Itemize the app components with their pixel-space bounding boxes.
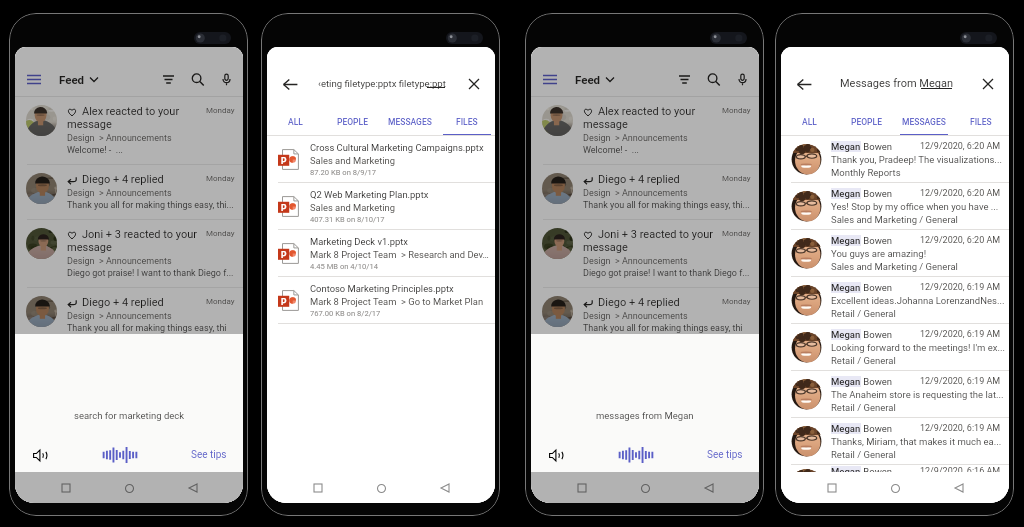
staticText: Bowen: [861, 282, 893, 293]
staticText: PEOPLE: [337, 117, 368, 127]
button[interactable]: Joni + 3 reacted to your: [531, 220, 759, 288]
staticText: Monday: [722, 229, 751, 238]
staticText: Bowen: [861, 235, 893, 246]
button[interactable]: Diego + 4 replied: [531, 165, 759, 220]
staticText: 12/9/2020, 6:19 AM: [920, 423, 1001, 434]
staticText: Retail / General: [831, 308, 896, 319]
staticText: Sales and Marketing / General: [831, 261, 958, 272]
staticText: 12/9/2020, 6:19 AM: [920, 329, 1001, 340]
button[interactable]: Search: [700, 66, 726, 92]
staticText: Megan: [831, 282, 861, 293]
button[interactable]: Back: [277, 71, 303, 97]
button[interactable]: FILES: [438, 108, 495, 136]
staticText: Mark 8 Project Team > Research and Dev..…: [310, 249, 489, 260]
staticText: Sales and Marketing: [310, 155, 395, 166]
button[interactable]: P: [267, 136, 495, 183]
staticText: Megan: [831, 188, 861, 199]
button[interactable]: See tips: [705, 447, 745, 463]
staticText: Sales and Marketing / General: [831, 214, 958, 225]
staticText: Thank you all for making things easy, th…: [67, 323, 227, 334]
staticText: Diego + 4 replied: [82, 296, 164, 309]
button[interactable]: Home: [368, 475, 394, 501]
staticText: The Anaheim store is requesting the lat.…: [831, 389, 1004, 400]
button[interactable]: Sound: [545, 444, 567, 466]
button[interactable]: Recents: [53, 475, 79, 501]
staticText: Design > Announcements: [583, 256, 688, 267]
staticText: P: [281, 250, 287, 260]
button[interactable]: Filter: [155, 66, 181, 92]
button[interactable]: Joni + 3 reacted to your: [15, 220, 243, 288]
staticText: Design > Announcements: [583, 311, 688, 322]
button[interactable]: Feed: [575, 73, 614, 86]
button[interactable]: Back: [432, 475, 458, 501]
button[interactable]: Diego + 4 replied: [531, 288, 759, 343]
button[interactable]: Back: [696, 475, 722, 501]
staticText: Bowen: [861, 376, 893, 387]
button[interactable]: ALL: [781, 108, 838, 136]
button[interactable]: Alex reacted to your: [15, 97, 243, 165]
button[interactable]: Feed: [59, 73, 98, 86]
staticText: Monday: [206, 174, 235, 183]
button[interactable]: Megan: [781, 418, 1009, 465]
staticText: Yes! Stop by my office when you have ...: [831, 201, 999, 212]
button[interactable]: Recents: [305, 475, 331, 501]
button[interactable]: MESSAGES: [895, 108, 952, 136]
button[interactable]: Back: [946, 475, 972, 501]
button[interactable]: Recents: [569, 475, 595, 501]
button[interactable]: Megan: [781, 465, 1009, 503]
staticText: Thank you all for making things easy, th…: [67, 200, 234, 211]
button[interactable]: Voice search: [729, 66, 755, 92]
staticText: Design > Announcements: [67, 256, 172, 267]
button[interactable]: Voice search: [213, 66, 239, 92]
button[interactable]: Megan: [781, 371, 1009, 418]
staticText: PEOPLE: [851, 117, 882, 127]
button[interactable]: Megan: [781, 230, 1009, 277]
staticText: Alex reacted to your: [598, 105, 696, 118]
staticText: 12/9/2020, 6:16 AM: [920, 466, 1001, 477]
button[interactable]: Filter: [671, 66, 697, 92]
button[interactable]: Diego + 4 replied: [15, 165, 243, 220]
staticText: 407.31 KB on 8/10/17: [310, 215, 385, 224]
button[interactable]: Sound: [29, 444, 51, 466]
staticText: Diego + 4 replied: [598, 296, 680, 309]
button[interactable]: Search: [184, 66, 210, 92]
staticText: Megan: [831, 423, 861, 434]
button[interactable]: PEOPLE: [324, 108, 381, 136]
button[interactable]: P: [267, 230, 495, 277]
button[interactable]: Back: [180, 475, 206, 501]
staticText: Monday: [206, 229, 235, 238]
button[interactable]: MESSAGES: [381, 108, 438, 136]
staticText: message: [67, 118, 112, 131]
button[interactable]: Megan: [781, 183, 1009, 230]
button[interactable]: Home: [116, 475, 142, 501]
button[interactable]: Recents: [819, 475, 845, 501]
button[interactable]: PEOPLE: [838, 108, 895, 136]
staticText: Bowen: [861, 188, 893, 199]
button[interactable]: Megan: [781, 277, 1009, 324]
button[interactable]: Back: [791, 71, 817, 97]
staticText: Design > Announcements: [67, 188, 172, 199]
staticText: Thank you all for making things easy, th…: [583, 200, 750, 211]
button[interactable]: Close: [462, 72, 486, 96]
staticText: Sales and Marketing: [310, 202, 395, 213]
button[interactable]: ALL: [267, 108, 324, 136]
staticText: See tips: [191, 449, 227, 461]
button[interactable]: FILES: [952, 108, 1009, 136]
staticText: message: [583, 241, 628, 254]
button[interactable]: P: [267, 183, 495, 230]
staticText: Thank you all for making things easy, th…: [583, 323, 743, 334]
button[interactable]: P: [267, 277, 495, 324]
staticText: Welcome! - ...: [67, 145, 123, 156]
button[interactable]: Home: [882, 475, 908, 501]
button[interactable]: Megan: [781, 136, 1009, 183]
button[interactable]: Megan: [781, 324, 1009, 371]
button[interactable]: Alex reacted to your: [531, 97, 759, 165]
button[interactable]: Menu: [537, 66, 563, 92]
button[interactable]: Menu: [21, 66, 47, 92]
button[interactable]: Home: [632, 475, 658, 501]
button[interactable]: Diego + 4 replied: [15, 288, 243, 343]
staticText: 12/9/2020, 6:19 AM: [920, 282, 1001, 293]
button[interactable]: See tips: [189, 447, 229, 463]
staticText: Feed: [575, 73, 601, 86]
button[interactable]: Close: [976, 72, 1000, 96]
